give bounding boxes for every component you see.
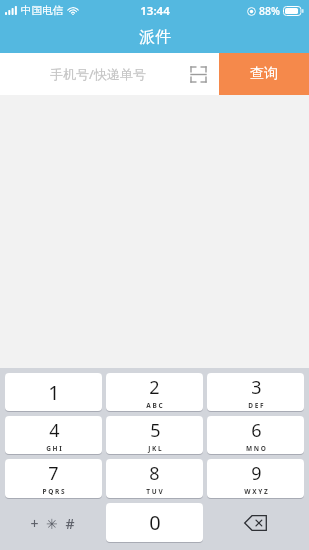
staticText: 7 [48,461,59,486]
staticText: 88% [259,4,280,18]
button[interactable]: 2 [106,373,203,411]
staticText: 4 [49,418,60,443]
staticText: 中国电信 [21,4,63,17]
staticText: 查询 [250,65,278,83]
button[interactable]: 4 [5,416,102,454]
staticText: P Q R S [42,487,65,496]
button[interactable]: 0 [106,503,203,542]
staticText: 8 [149,461,160,486]
staticText: 1 [48,379,60,406]
button[interactable]: 7 [5,459,102,498]
staticText: G H I [46,444,62,453]
button[interactable]: 6 [207,416,304,454]
staticText: 派件 [139,27,171,47]
staticText: 3 [251,375,262,400]
button[interactable]: + ✳ # [5,503,102,543]
button[interactable]: 8 [106,459,203,498]
staticText: W X Y Z [244,487,268,496]
staticText: 5 [150,418,161,443]
staticText: M N O [246,444,266,453]
staticText: D E F [248,401,264,410]
staticText: A B C [146,401,163,410]
staticText: + ✳ # [30,514,77,533]
button[interactable]: 扫一扫 [186,62,210,86]
button[interactable]: 手机号/快递单号 [0,53,219,95]
staticText: 手机号/快递单号 [10,65,186,83]
button[interactable]: 5 [106,416,203,454]
staticText: 6 [251,418,262,443]
staticText: T U V [146,487,163,496]
button[interactable]: 9 [207,459,304,498]
button[interactable]: 1 [5,373,102,411]
staticText: 13:44 [140,3,170,19]
button[interactable]: 3 [207,373,304,411]
staticText: 2 [149,375,160,400]
button[interactable]: 删除 [207,503,304,543]
staticText: J K L [148,444,162,453]
button[interactable]: 查询 [219,53,309,95]
staticText: 9 [251,461,262,486]
staticText: 0 [149,509,161,536]
